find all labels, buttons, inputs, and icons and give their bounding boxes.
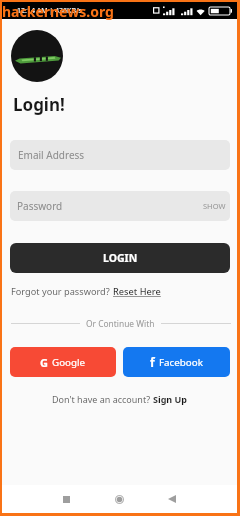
button[interactable]: LOGIN	[10, 243, 230, 273]
staticText: Google	[52, 356, 86, 369]
button[interactable]: f	[123, 347, 230, 377]
staticText: 12:14 AM | 436KB/s	[17, 6, 82, 16]
staticText: hackernews.org	[2, 2, 114, 21]
staticText: LOGIN	[103, 251, 138, 265]
button[interactable]: Home	[107, 485, 132, 513]
staticText: Password	[17, 199, 63, 213]
staticText: G	[40, 355, 48, 370]
staticText: Don't have an account?	[52, 393, 153, 405]
staticText: Facebook	[159, 356, 203, 369]
button[interactable]: SHOW	[203, 201, 226, 211]
staticText: Email Address	[18, 148, 85, 162]
staticText: f	[150, 354, 155, 370]
button[interactable]: Recent apps	[54, 485, 79, 513]
button[interactable]: Password	[10, 191, 230, 221]
button[interactable]: Sign Up	[153, 393, 188, 405]
staticText: Or Continue With	[86, 318, 155, 329]
button[interactable]: Back	[159, 485, 184, 513]
button[interactable]: G	[10, 347, 116, 377]
button[interactable]: Reset Here	[113, 285, 161, 298]
button[interactable]: Email Address	[10, 140, 230, 170]
staticText: Forgot your password?	[11, 285, 113, 298]
staticText: Login!	[13, 93, 65, 116]
